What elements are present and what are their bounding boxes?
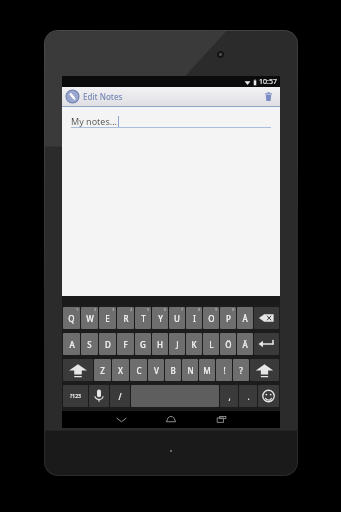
staticText: X — [118, 365, 123, 376]
staticText: Y — [158, 313, 163, 324]
staticText: ? — [239, 365, 243, 376]
button[interactable]: Shift — [250, 359, 279, 381]
staticText: 2 — [94, 307, 97, 312]
button[interactable]: J — [169, 333, 185, 355]
staticText: 8 — [198, 307, 201, 312]
button[interactable]: Ö — [220, 333, 236, 355]
staticText: M — [203, 365, 211, 376]
button[interactable]: P — [220, 307, 236, 329]
button[interactable]: G — [135, 333, 151, 355]
staticText: D — [105, 339, 111, 350]
staticText: 7 — [181, 307, 184, 312]
staticText: H — [157, 339, 163, 350]
staticText: / — [118, 391, 122, 402]
staticText: F — [123, 339, 128, 350]
button[interactable]: F — [117, 333, 134, 355]
button[interactable]: My notes... — [71, 113, 271, 128]
button[interactable]: U — [169, 307, 185, 329]
staticText: P — [226, 313, 231, 324]
staticText: ! — [223, 365, 226, 376]
staticText: C — [136, 365, 142, 376]
staticText: Z — [100, 365, 105, 376]
staticText: 9 — [215, 307, 218, 312]
staticText: My notes... — [71, 115, 117, 127]
staticText: . — [247, 391, 250, 402]
button[interactable]: ? — [233, 359, 249, 381]
staticText: R — [123, 313, 129, 324]
staticText: Å — [242, 313, 248, 324]
staticText: T — [141, 313, 146, 324]
staticText: 6 — [164, 307, 167, 312]
button[interactable]: K — [186, 333, 202, 355]
staticText: G — [140, 339, 146, 350]
button[interactable]: Back — [104, 411, 138, 428]
button[interactable]: O — [203, 307, 219, 329]
staticText: S — [87, 339, 92, 350]
button[interactable]: A — [63, 333, 80, 355]
button[interactable]: V — [148, 359, 164, 381]
staticText: K — [191, 339, 197, 350]
button[interactable]: X — [112, 359, 129, 381]
staticText: 5 — [147, 307, 150, 312]
button[interactable]: Shift — [63, 359, 93, 381]
staticText: Ä — [242, 339, 248, 350]
button[interactable]: Backspace — [254, 307, 279, 329]
staticText: Ö — [225, 339, 232, 350]
button[interactable]: , — [220, 385, 238, 407]
button[interactable]: / — [110, 385, 130, 407]
button[interactable]: Delete — [260, 87, 276, 106]
button[interactable]: Y — [152, 307, 168, 329]
button[interactable]: E — [99, 307, 116, 329]
button[interactable]: I — [186, 307, 202, 329]
staticText: O — [208, 313, 215, 324]
button[interactable]: Enter — [254, 333, 279, 355]
button[interactable]: Z — [94, 359, 111, 381]
button[interactable]: D — [99, 333, 116, 355]
staticText: J — [176, 339, 179, 350]
button[interactable]: App icon — [66, 90, 79, 103]
button[interactable]: L — [203, 333, 219, 355]
staticText: Q — [68, 313, 75, 324]
staticText: Edit Notes — [83, 91, 123, 102]
button[interactable]: Voice input — [89, 385, 109, 407]
button[interactable]: B — [165, 359, 181, 381]
button[interactable]: Ä — [237, 333, 253, 355]
button[interactable]: M — [199, 359, 215, 381]
staticText: 10:57 — [259, 77, 277, 87]
staticText: 0 — [232, 307, 235, 312]
staticText: W — [86, 313, 94, 324]
staticText: ?123 — [70, 393, 81, 400]
staticText: 3 — [112, 307, 115, 312]
button[interactable]: Q — [63, 307, 80, 329]
staticText: I — [193, 313, 196, 324]
staticText: A — [69, 339, 75, 350]
button[interactable]: Recent apps — [204, 411, 238, 428]
staticText: N — [187, 365, 194, 376]
staticText: , — [228, 391, 231, 402]
staticText: L — [209, 339, 214, 350]
button[interactable]: W — [81, 307, 98, 329]
button[interactable]: C — [130, 359, 147, 381]
button[interactable]: R — [117, 307, 134, 329]
staticText: 1 — [76, 307, 79, 312]
staticText: U — [174, 313, 180, 324]
button[interactable]: Home — [154, 411, 188, 428]
button[interactable]: N — [182, 359, 198, 381]
button[interactable]: H — [152, 333, 168, 355]
button[interactable]: T — [135, 307, 151, 329]
staticText: E — [105, 313, 110, 324]
staticText: B — [170, 365, 176, 376]
button[interactable]: S — [81, 333, 98, 355]
staticText: 4 — [130, 307, 133, 312]
button[interactable]: Emoji — [258, 385, 279, 407]
button[interactable]: ?123 — [63, 385, 88, 407]
staticText: V — [154, 365, 159, 376]
button[interactable]: ! — [216, 359, 232, 381]
button[interactable]: Å — [237, 307, 253, 329]
button[interactable]: . — [239, 385, 257, 407]
